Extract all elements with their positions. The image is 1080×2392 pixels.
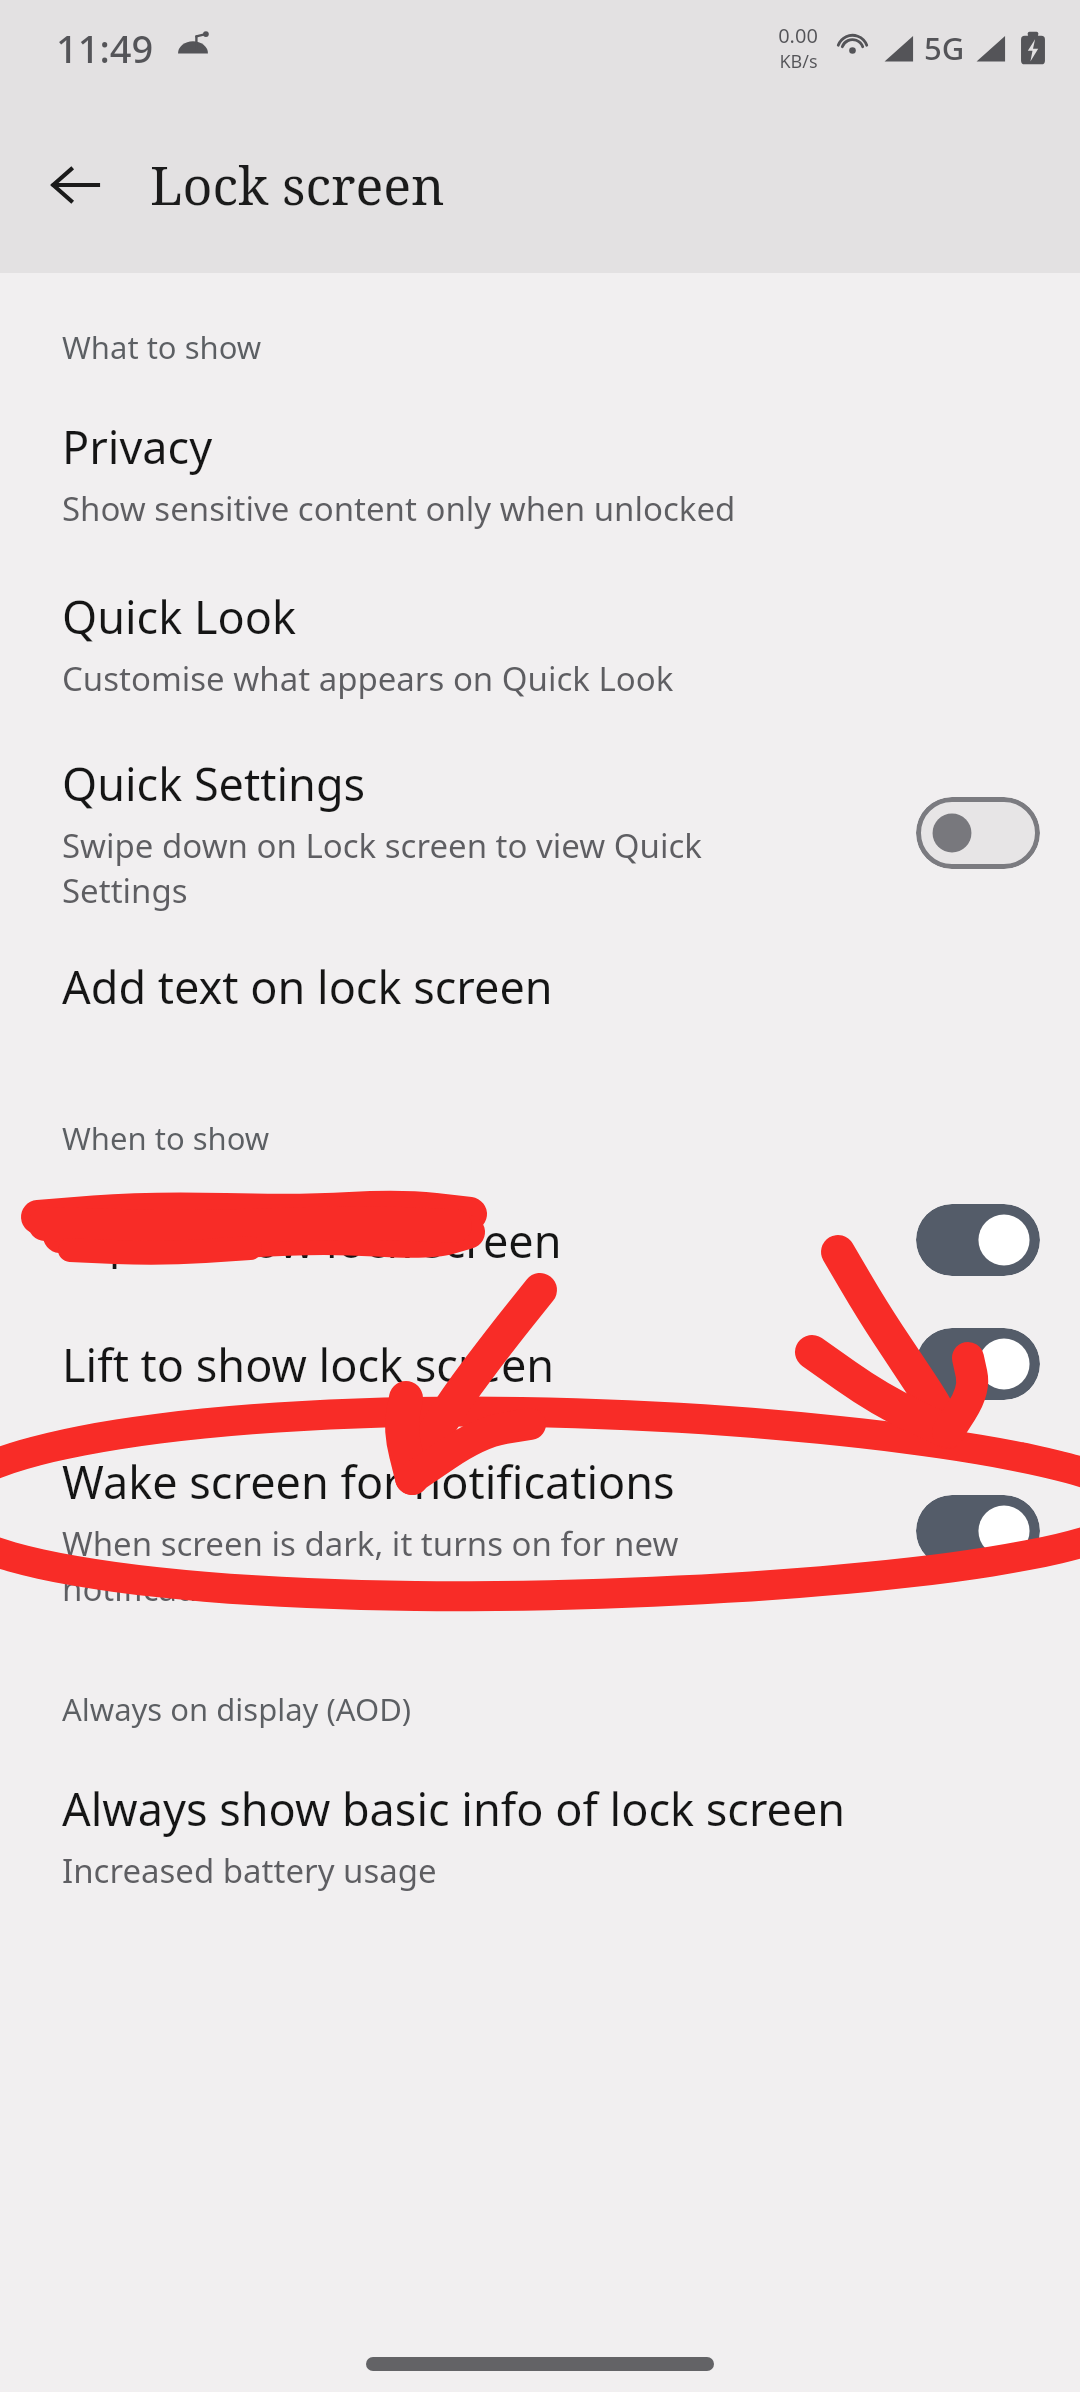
staticText: KB/s bbox=[779, 49, 818, 74]
staticText: 11:49 bbox=[56, 22, 154, 74]
staticText: What to show bbox=[62, 326, 262, 368]
button[interactable]: Always show basic info of lock screen bbox=[0, 1778, 1080, 1893]
staticText: Show sensitive content only when unlocke… bbox=[62, 486, 736, 531]
staticText: Swipe down on Lock screen to view Quick … bbox=[62, 823, 702, 912]
staticText: Wake screen for notifications bbox=[62, 1451, 675, 1512]
button[interactable]: Wake screen for notifications bbox=[0, 1451, 1080, 1610]
staticText: Tap to show lock screen bbox=[62, 1210, 562, 1271]
button[interactable]: On bbox=[916, 1495, 1040, 1567]
staticText: 5G bbox=[924, 27, 965, 69]
button[interactable]: On bbox=[916, 1328, 1040, 1400]
staticText: Customise what appears on Quick Look bbox=[62, 656, 674, 701]
button[interactable]: Quick Look bbox=[0, 586, 1080, 701]
staticText: Quick Settings bbox=[62, 753, 366, 814]
button[interactable]: Back bbox=[30, 140, 120, 230]
staticText: Quick Look bbox=[62, 586, 296, 647]
staticText: When screen is dark, it turns on for new… bbox=[62, 1521, 679, 1610]
button[interactable]: Off bbox=[916, 797, 1040, 869]
button[interactable]: Add text on lock screen bbox=[0, 956, 1080, 1017]
staticText: Always on display (AOD) bbox=[62, 1688, 412, 1730]
staticText: Add text on lock screen bbox=[62, 956, 553, 1017]
button[interactable]: Lift to show lock screen bbox=[0, 1328, 1080, 1400]
staticText: Lift to show lock screen bbox=[62, 1334, 555, 1395]
button[interactable]: Tap to show lock screen bbox=[0, 1204, 1080, 1276]
staticText: Increased battery usage bbox=[62, 1848, 437, 1893]
button[interactable]: Privacy bbox=[0, 416, 1080, 531]
staticText: Privacy bbox=[62, 416, 213, 477]
staticText: Lock screen bbox=[150, 149, 445, 220]
button[interactable]: On bbox=[916, 1204, 1040, 1276]
staticText: When to show bbox=[62, 1117, 270, 1159]
button[interactable]: Quick Settings bbox=[0, 753, 1080, 912]
staticText: Always show basic info of lock screen bbox=[62, 1778, 846, 1839]
staticText: 0.00 bbox=[778, 22, 818, 49]
